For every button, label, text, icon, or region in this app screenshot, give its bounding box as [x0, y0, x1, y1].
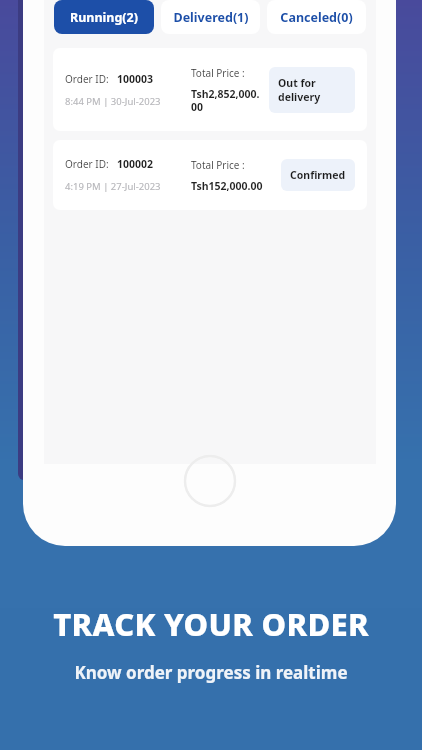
staticText: Total Price :: [191, 158, 245, 172]
button[interactable]: Order ID:: [53, 140, 367, 210]
staticText: 100002: [117, 157, 154, 171]
button[interactable]: Delivered(1): [161, 0, 260, 34]
button[interactable]: Order ID:: [53, 48, 367, 131]
staticText: 100003: [117, 72, 154, 86]
staticText: Confirmed: [290, 168, 346, 182]
button[interactable]: Out for delivery: [269, 67, 355, 113]
staticText: Tsh152,000.00: [191, 179, 263, 193]
staticText: Delivered(1): [173, 9, 249, 26]
staticText: Tsh2,852,000. 00: [191, 87, 260, 114]
staticText: Total Price :: [191, 66, 245, 80]
staticText: Order ID:: [65, 157, 109, 171]
staticText: Know order progress in realtime: [74, 661, 348, 684]
staticText: Canceled(0): [280, 9, 353, 26]
staticText: TRACK YOUR ORDER: [53, 603, 369, 645]
staticText: Out for delivery: [278, 76, 346, 104]
button[interactable]: Canceled(0): [267, 0, 366, 34]
staticText: 8:44 PM | 30-Jul-2023: [65, 95, 161, 108]
button[interactable]: Confirmed: [281, 159, 355, 191]
staticText: 4:19 PM | 27-Jul-2023: [65, 180, 161, 193]
staticText: Order ID:: [65, 72, 109, 86]
staticText: Running(2): [70, 9, 138, 26]
button[interactable]: Running(2): [54, 0, 154, 34]
